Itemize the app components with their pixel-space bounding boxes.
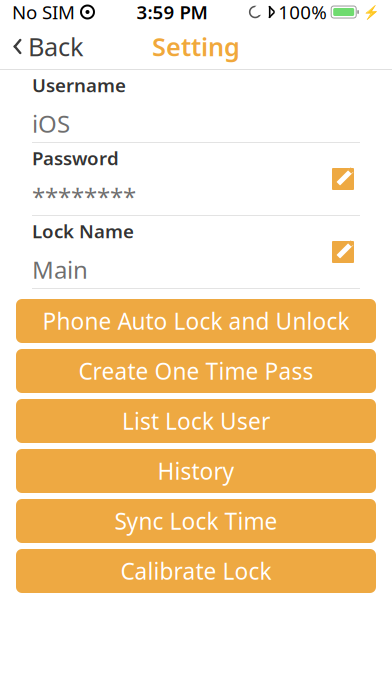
staticText: Calibrate Lock [120,556,271,586]
staticText: List Lock User [122,406,270,436]
button[interactable]: Edit Lock Name [326,233,360,271]
staticText: Lock Name [32,219,134,243]
staticText: 3:59 PM [137,0,208,24]
staticText: ******** [32,180,136,212]
staticText: Password [32,146,119,170]
staticText: Main [32,253,88,285]
staticText: 100% [278,0,327,24]
staticText: Create One Time Pass [78,356,313,386]
button[interactable]: Edit Password [326,160,360,198]
staticText: Setting [152,30,240,63]
staticText: Phone Auto Lock and Unlock [42,306,349,336]
staticText: Sync Lock Time [114,506,277,536]
button[interactable]: Sync Lock Time [16,499,376,543]
button[interactable]: List Lock User [16,399,376,443]
staticText: ⚡ [363,4,380,20]
button[interactable]: History [16,449,376,493]
staticText: History [157,456,234,486]
button[interactable]: Calibrate Lock [16,549,376,593]
button[interactable]: Back [2,24,94,69]
staticText: Back [28,30,84,63]
staticText: No SIM [12,0,75,24]
staticText: Username [32,73,126,97]
button[interactable]: Create One Time Pass [16,349,376,393]
button[interactable]: Phone Auto Lock and Unlock [16,299,376,343]
staticText: iOS [32,107,70,139]
